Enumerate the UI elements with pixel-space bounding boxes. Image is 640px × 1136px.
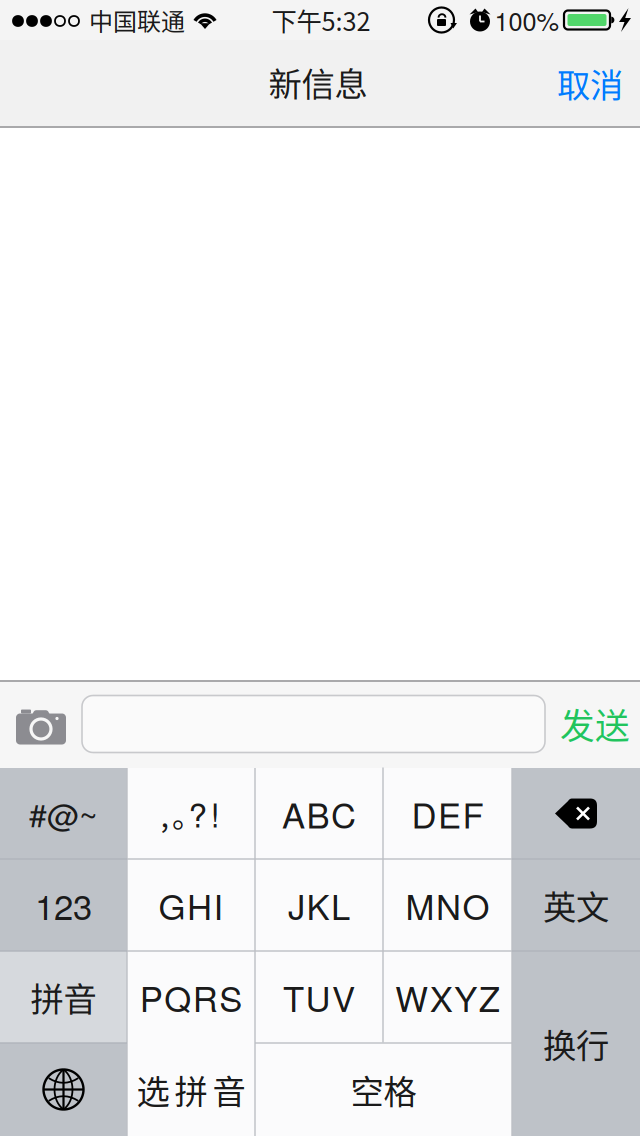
button[interactable]: Delete (512, 768, 640, 859)
staticText: 发送 (560, 699, 630, 749)
staticText: GHI (158, 880, 223, 930)
staticText: ! (210, 789, 219, 837)
button[interactable]: 拼音 (0, 951, 127, 1043)
staticText: ? (188, 789, 207, 837)
staticText: 新信息 (268, 58, 367, 106)
button[interactable]: 英文 (512, 859, 640, 951)
button[interactable]: 取消 (538, 46, 640, 120)
button[interactable]: GHI (127, 859, 255, 951)
staticText: 123 (35, 880, 92, 930)
button[interactable]: #@~ (0, 768, 127, 859)
button[interactable]: 空格 (255, 1043, 512, 1136)
button[interactable]: PQRS (127, 951, 255, 1043)
staticText: ABC (282, 789, 356, 838)
button[interactable]: 123 (0, 859, 127, 951)
staticText: 取消 (557, 59, 623, 107)
staticText: 选拼音 (136, 1065, 245, 1114)
staticText: DEF (411, 789, 483, 838)
button[interactable]: MNO (383, 859, 512, 951)
staticText: PQRS (140, 972, 242, 1022)
staticText: #@~ (29, 791, 98, 836)
button[interactable]: 选拼音 (127, 1043, 255, 1136)
staticText: 100% (494, 2, 559, 38)
button[interactable]: ABC (255, 768, 383, 859)
button[interactable]: WXYZ (383, 951, 512, 1043)
button[interactable]: DEF (383, 768, 512, 859)
staticText: 下午5:32 (271, 2, 370, 38)
button[interactable]: Camera (5, 693, 77, 755)
staticText: TUV (283, 972, 355, 1022)
staticText: JKL (288, 880, 350, 930)
staticText: WXYZ (395, 972, 500, 1022)
staticText: 。 (172, 792, 203, 836)
staticText: MNO (405, 880, 489, 930)
staticText: 空格 (350, 1065, 416, 1114)
staticText: , (160, 792, 169, 836)
staticText: 拼音 (30, 973, 96, 1021)
button[interactable]: Next keyboard (0, 1043, 127, 1136)
button[interactable]: , (127, 768, 255, 859)
staticText: 换行 (543, 1019, 609, 1068)
button[interactable]: 发送 (556, 693, 634, 755)
staticText: 英文 (543, 881, 609, 929)
staticText: 中国联通 (89, 3, 185, 37)
button[interactable]: TUV (255, 951, 383, 1043)
button[interactable]: JKL (255, 859, 383, 951)
button[interactable]: 换行 (512, 951, 640, 1136)
